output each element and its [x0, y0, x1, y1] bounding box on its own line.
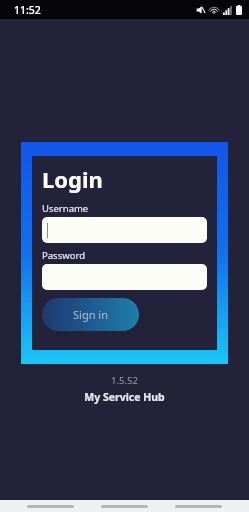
staticText: My Service Hub: [84, 390, 165, 404]
staticText: Password: [42, 249, 85, 262]
staticText: Login: [42, 164, 103, 194]
staticText: 1.5.52: [111, 374, 138, 387]
button[interactable]: Sign in: [42, 298, 139, 331]
staticText: 11:52: [14, 3, 41, 17]
button[interactable]: [42, 264, 207, 290]
button[interactable]: [42, 217, 207, 243]
button[interactable]: Navigation button: [101, 505, 148, 508]
staticText: Username: [42, 202, 89, 215]
button[interactable]: Navigation button: [175, 505, 222, 508]
button[interactable]: Navigation button: [27, 505, 74, 508]
staticText: Sign in: [73, 307, 108, 322]
